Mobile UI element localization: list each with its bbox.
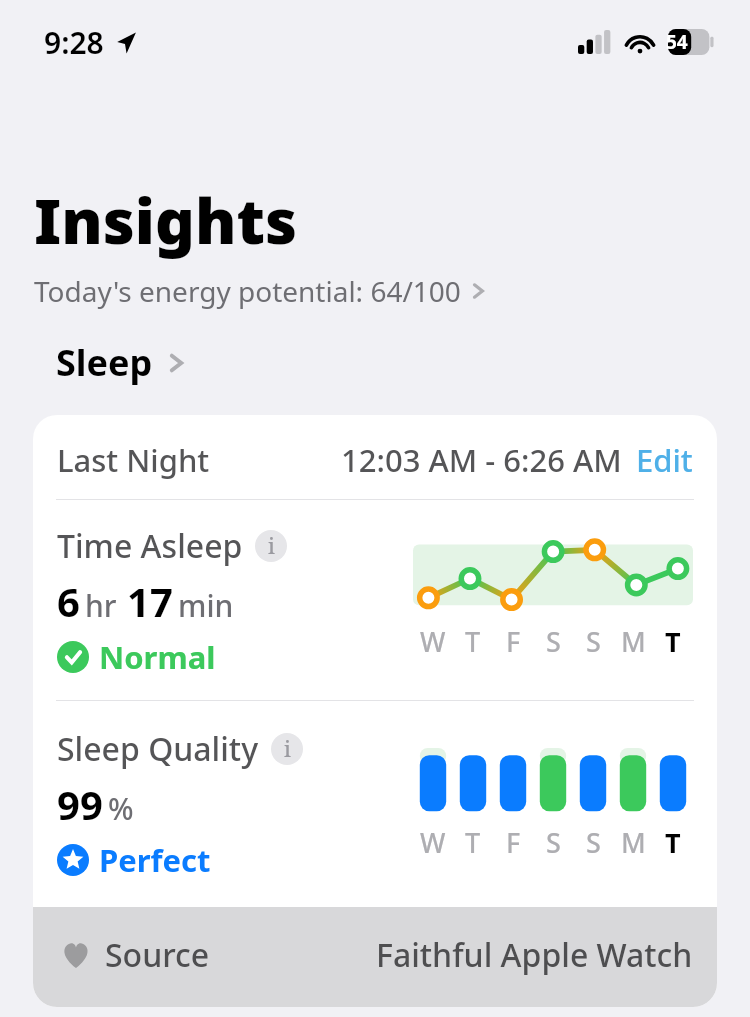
button[interactable]: Edit (636, 439, 693, 481)
staticText: Perfect (99, 839, 211, 881)
staticText: Time Asleep (57, 524, 243, 568)
staticText: % (108, 788, 134, 829)
staticText: F (506, 623, 521, 660)
staticText: T (465, 623, 481, 660)
button[interactable]: Info about Sleep Quality (271, 733, 303, 765)
staticText: W (420, 824, 446, 861)
staticText: 9:28 (44, 22, 104, 63)
staticText: Sleep (56, 338, 153, 387)
staticText: T (465, 824, 481, 861)
staticText: Source (105, 933, 210, 977)
button[interactable]: Sleep (56, 338, 189, 387)
staticText: Today's energy potential: 64/100 (34, 272, 461, 310)
staticText: 99 (57, 777, 103, 831)
button[interactable]: Today's energy potential: 64/100 (34, 272, 489, 310)
staticText: M (621, 824, 646, 861)
staticText: 54 (666, 29, 688, 55)
staticText: M (621, 623, 646, 660)
staticText: Edit (636, 439, 693, 481)
staticText: Last Night (57, 439, 210, 481)
staticText: S (546, 623, 561, 660)
button[interactable]: Source (33, 907, 717, 1007)
staticText: Sleep Quality (57, 727, 259, 771)
staticText: F (506, 824, 521, 861)
button[interactable]: Info about Time Asleep (255, 530, 287, 562)
staticText: 6 (57, 574, 80, 628)
staticText: Normal (99, 636, 216, 678)
staticText: 12:03 AM - 6:26 AM (341, 439, 622, 481)
staticText: S (586, 824, 601, 861)
staticText: T (665, 623, 681, 660)
staticText: W (420, 623, 446, 660)
staticText: Insights (34, 178, 298, 262)
staticText: min (178, 585, 234, 626)
staticText: T (665, 824, 681, 861)
staticText: Faithful Apple Watch (376, 933, 693, 977)
staticText: S (546, 824, 561, 861)
staticText: i (284, 735, 291, 764)
staticText: hr (85, 585, 117, 626)
staticText: i (268, 532, 275, 561)
staticText: S (586, 623, 601, 660)
staticText: 17 (127, 574, 173, 628)
